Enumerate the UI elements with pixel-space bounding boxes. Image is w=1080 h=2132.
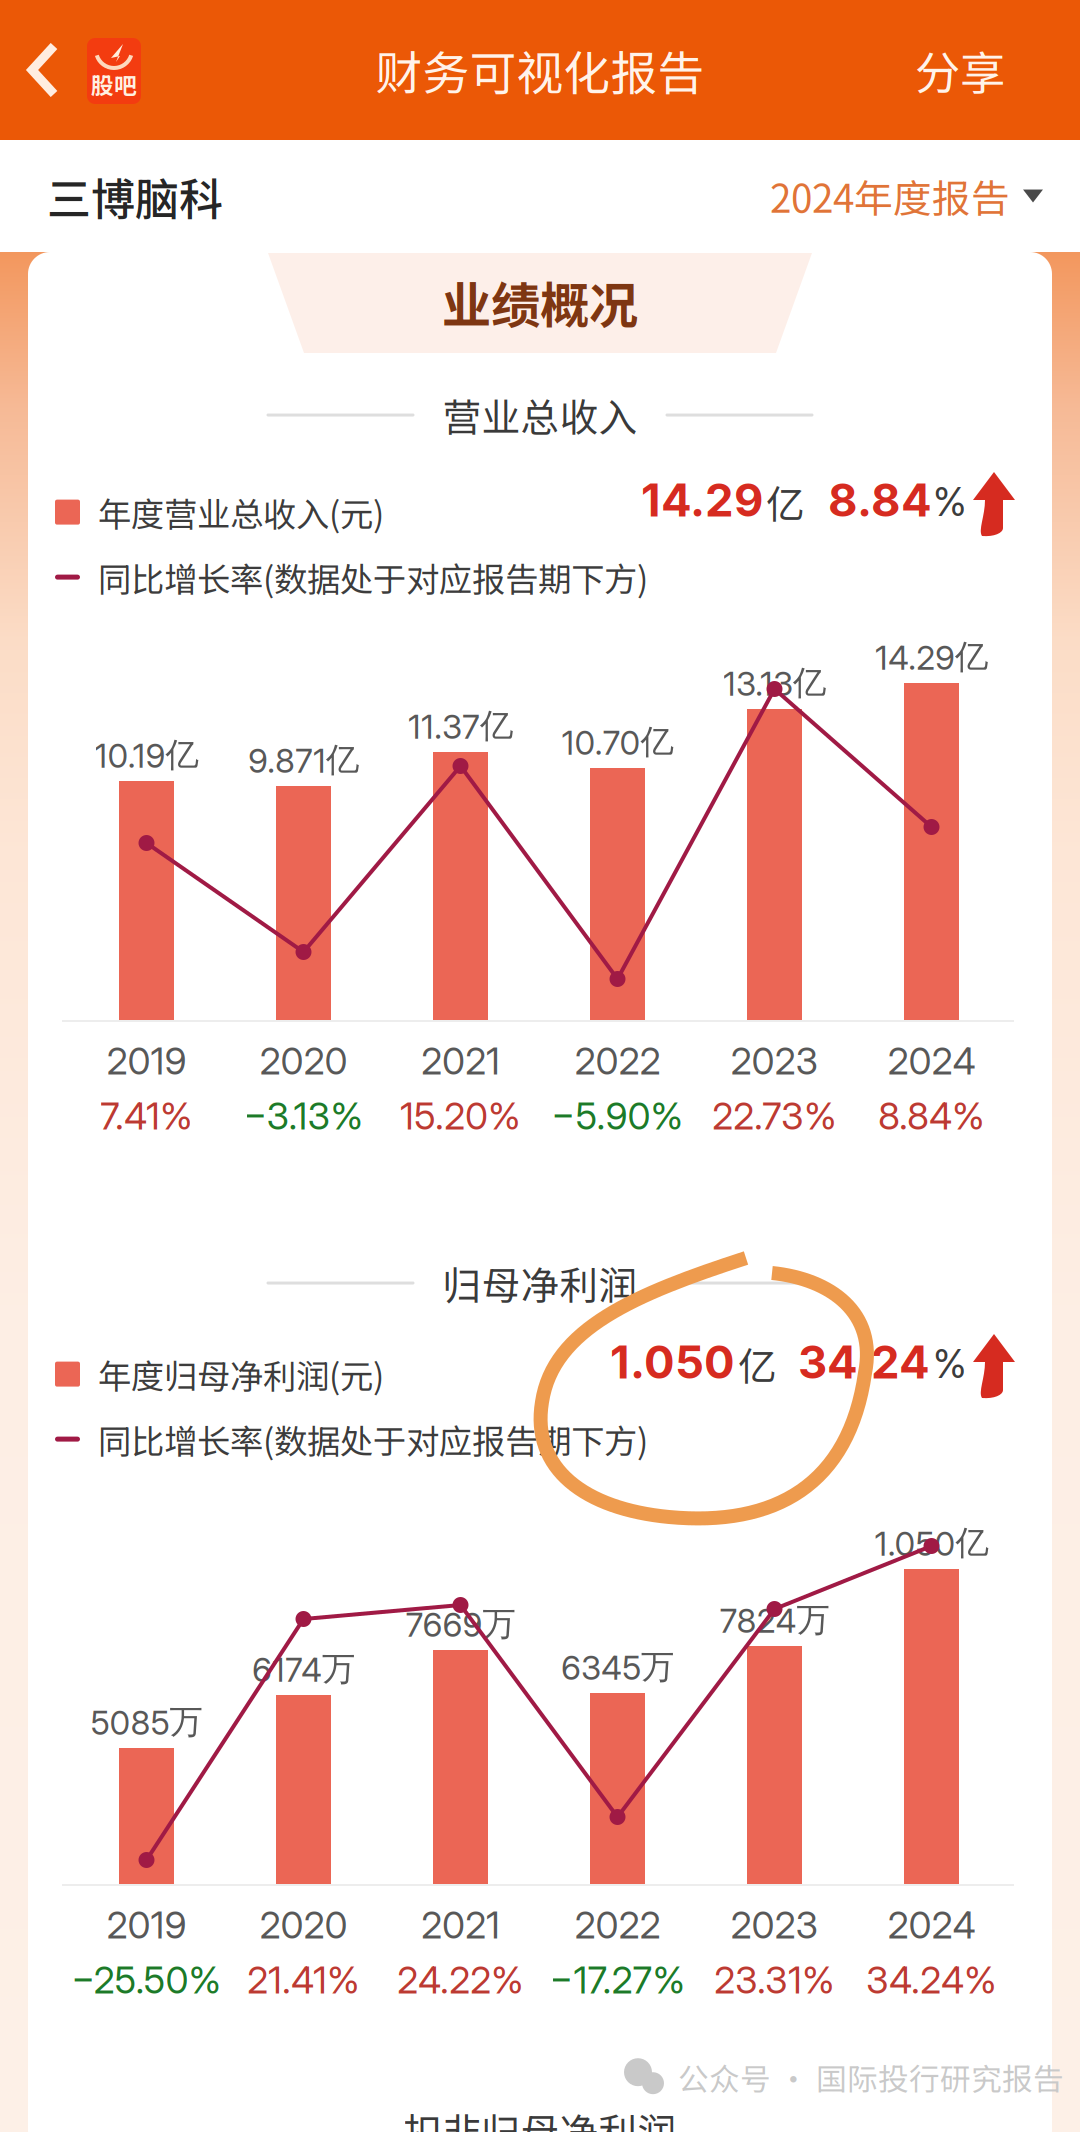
staticText: 2024年度报告 — [770, 168, 1010, 224]
button[interactable]: 2024年度报告 — [770, 140, 1043, 252]
staticText: 14.29亿 — [875, 636, 988, 678]
staticText: 34.24 — [798, 1335, 930, 1389]
staticText: 分享 — [915, 37, 1005, 103]
staticText: 7669万 — [405, 1603, 515, 1645]
staticText: 三博脑科 — [47, 164, 223, 228]
staticText: 2022 — [574, 1902, 660, 1948]
staticText: 22.73% — [712, 1093, 837, 1139]
staticText: 亿 — [766, 474, 805, 530]
staticText: 15.20% — [400, 1093, 521, 1139]
staticText: 2022 — [574, 1038, 660, 1084]
staticText: −17.27% — [549, 1957, 685, 2003]
staticText: % — [933, 479, 967, 525]
staticText: 13.13亿 — [723, 662, 826, 704]
staticText: 2021 — [421, 1902, 500, 1948]
staticText: 7.41% — [100, 1093, 193, 1139]
staticText: 1.050 — [610, 1335, 735, 1389]
staticText: 业绩概况 — [442, 266, 638, 338]
staticText: 2023 — [730, 1038, 818, 1084]
staticText: 8.84 — [828, 473, 932, 527]
button[interactable]: 分享 — [880, 0, 1040, 140]
staticText: % — [933, 1341, 967, 1387]
staticText: 年度归母净利润(元) — [98, 1350, 384, 1398]
staticText: 23.31% — [714, 1957, 835, 2003]
staticText: −5.90% — [551, 1093, 683, 1139]
staticText: 同比增长率(数据处于对应报告期下方) — [98, 1415, 648, 1463]
staticText: 21.41% — [247, 1957, 360, 2003]
staticText: 6345万 — [561, 1646, 674, 1688]
staticText: 股吧 — [91, 68, 137, 100]
staticText: 8.84% — [878, 1093, 985, 1139]
staticText: 亿 — [738, 1336, 777, 1392]
staticText: 财务可视化报告 — [375, 36, 704, 104]
staticText: 11.37亿 — [408, 705, 513, 747]
staticText: 营业总收入 — [442, 387, 637, 443]
staticText: 公众号 · 国际投行研究报告 — [678, 2055, 1064, 2099]
staticText: −25.50% — [71, 1957, 221, 2003]
button[interactable]: 返回 — [16, 30, 72, 110]
staticText: 10.70亿 — [561, 721, 673, 763]
staticText: 10.19亿 — [94, 734, 198, 776]
staticText: 2024 — [887, 1038, 975, 1084]
staticText: 34.24% — [866, 1957, 997, 2003]
staticText: 年度营业总收入(元) — [98, 488, 384, 536]
button[interactable]: 股吧 — [87, 38, 141, 104]
staticText: 7824万 — [719, 1599, 829, 1641]
staticText: −3.13% — [243, 1093, 363, 1139]
staticText: 9.871亿 — [248, 739, 359, 781]
staticText: 2020 — [259, 1902, 347, 1948]
staticText: 2019 — [106, 1038, 186, 1084]
staticText: 24.22% — [397, 1957, 524, 2003]
staticText: 14.29 — [641, 473, 763, 527]
staticText: 2020 — [259, 1038, 347, 1084]
staticText: 2019 — [106, 1902, 186, 1948]
staticText: 同比增长率(数据处于对应报告期下方) — [98, 553, 648, 601]
staticText: 1.050亿 — [874, 1522, 988, 1564]
staticText: 2023 — [730, 1902, 818, 1948]
staticText: 2021 — [421, 1038, 500, 1084]
staticText: 2024 — [887, 1902, 975, 1948]
staticText: 6174万 — [252, 1648, 355, 1690]
staticText: 扣非归母净利润 — [403, 2102, 676, 2132]
staticText: 5085万 — [90, 1701, 202, 1743]
staticText: 归母净利润 — [442, 1255, 637, 1311]
